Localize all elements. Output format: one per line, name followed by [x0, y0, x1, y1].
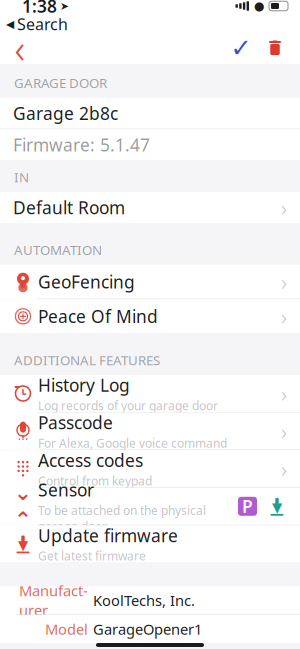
staticText: GarageOpener1: [93, 619, 202, 639]
staticText: ›: [281, 454, 287, 484]
button[interactable]: GeoFencing: [0, 265, 300, 299]
staticText: ▼: [18, 537, 28, 552]
button[interactable]: Garage 2b8c: [0, 98, 300, 129]
button[interactable]: ▼: [0, 525, 300, 562]
staticText: Firmware: 5.1.47: [13, 133, 150, 156]
staticText: Update firmware: [38, 524, 178, 547]
staticText: ➤: [60, 0, 69, 12]
staticText: Garage 2b8c: [13, 102, 118, 125]
button[interactable]: Access codes: [0, 450, 300, 487]
staticText: ✓: [230, 34, 251, 62]
staticText: Model: [45, 619, 88, 639]
staticText: GARAGE DOOR: [14, 74, 107, 92]
button[interactable]: Save: [224, 33, 258, 63]
staticText: GeoFencing: [38, 270, 135, 293]
staticText: AUTOMATION: [14, 241, 102, 259]
staticText: To be attached on the physical garage do…: [38, 502, 206, 534]
staticText: ⌃: [14, 508, 32, 532]
staticText: ‹: [14, 21, 25, 74]
staticText: Manufacturer: [19, 581, 88, 620]
button[interactable]: ◀: [0, 12, 68, 36]
staticText: For Alexa, Google voice command: [38, 435, 227, 451]
staticText: ●: [254, 0, 264, 13]
button[interactable]: Back: [0, 33, 40, 63]
staticText: ›: [281, 301, 287, 331]
button[interactable]: Default Room: [0, 192, 300, 223]
staticText: ◀: [6, 18, 14, 30]
staticText: Get latest firmware: [38, 548, 146, 564]
staticText: Sensor: [38, 478, 94, 501]
button[interactable]: Firmware: 5.1.47: [0, 129, 300, 160]
staticText: ADDITIONAL FEATURES: [14, 351, 160, 369]
staticText: Search: [17, 13, 68, 35]
button[interactable]: ⌄: [0, 488, 300, 525]
staticText: ›: [281, 416, 287, 446]
staticText: P: [242, 495, 253, 518]
staticText: Log records of your garage door: [38, 398, 218, 413]
staticText: ›: [281, 192, 287, 222]
staticText: Peace Of Mind: [38, 305, 158, 328]
staticText: Passcode: [38, 411, 113, 434]
staticText: Control from keypad: [38, 473, 152, 489]
button[interactable]: Delete: [258, 33, 292, 63]
staticText: Default Room: [13, 196, 125, 219]
staticText: ›: [281, 267, 287, 297]
button[interactable]: Peace Of Mind: [0, 299, 300, 333]
staticText: ›: [281, 378, 287, 409]
button[interactable]: History Log: [0, 375, 300, 412]
staticText: IN: [14, 168, 29, 186]
staticText: ▼: [272, 500, 282, 515]
staticText: Access codes: [38, 449, 143, 472]
button[interactable]: Passcode: [0, 413, 300, 450]
staticText: KoolTechs, Inc.: [93, 591, 195, 610]
staticText: ⌄: [14, 481, 32, 505]
staticText: History Log: [38, 373, 130, 396]
staticText: 1:38: [22, 0, 57, 17]
